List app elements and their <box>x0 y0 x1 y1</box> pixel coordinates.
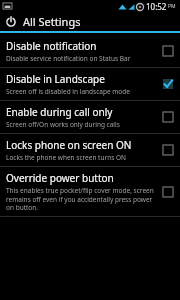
staticText: Enable during call only <box>6 105 113 119</box>
button[interactable]: Enable during call only <box>0 101 180 133</box>
staticText: All Settings <box>23 14 81 29</box>
staticText: Locks the phone when screen turns ON <box>6 153 126 162</box>
button[interactable]: Disable in Landscape <box>0 68 180 100</box>
button[interactable]: Disable notification <box>0 35 180 67</box>
staticText: Disable service notification on Status B… <box>6 54 131 63</box>
staticText: Override power button <box>6 171 114 185</box>
staticText: PM <box>168 3 176 10</box>
staticText: This enables true pocket/flip cover mode… <box>6 186 156 212</box>
staticText: Disable in Landscape <box>6 72 105 86</box>
button[interactable]: Power <box>0 12 180 31</box>
staticText: Screen off/On works only during calls <box>6 120 120 129</box>
staticText: Locks phone on screen ON <box>6 138 132 152</box>
staticText: Screen off is disabled in landscape mode <box>6 87 130 96</box>
button[interactable]: Locks phone on screen ON <box>0 134 180 166</box>
staticText: 10:52 <box>146 1 167 12</box>
button[interactable]: Override power button <box>0 167 180 216</box>
staticText: Disable notification <box>6 39 97 53</box>
other: Power <box>5 16 17 28</box>
